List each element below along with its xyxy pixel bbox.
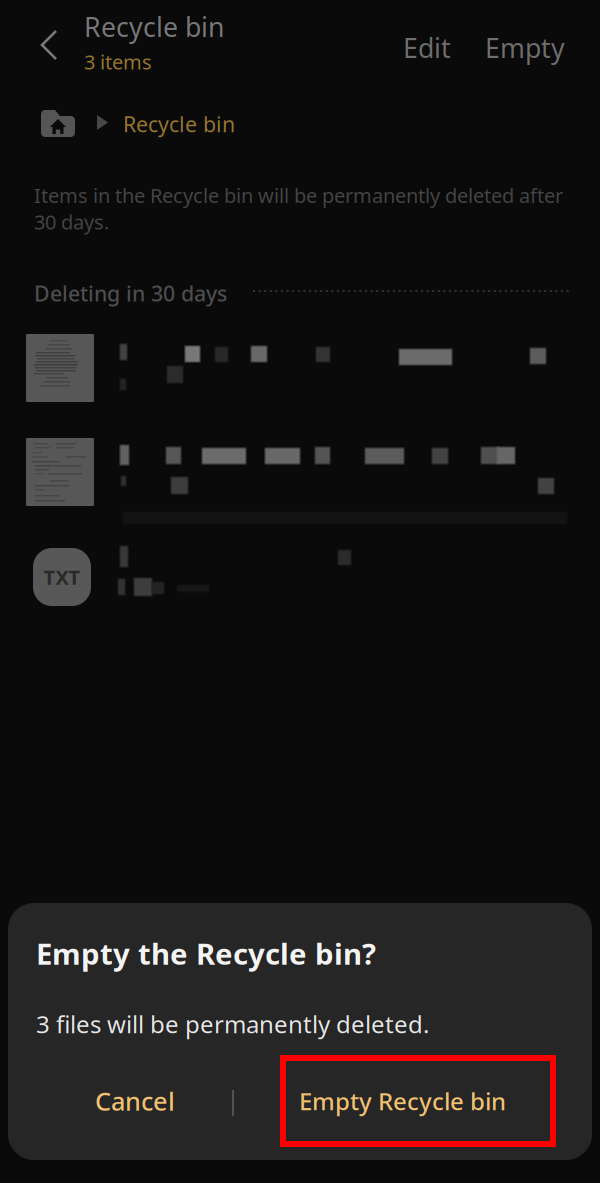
staticText: Edit [403,30,451,65]
button[interactable]: Empty [473,24,577,71]
button[interactable]: Cancel [76,1070,194,1132]
staticText: Deleting in 30 days [34,279,227,307]
staticText: Empty the Recycle bin? [36,934,376,973]
button[interactable]: Document [26,438,94,506]
staticText: Recycle bin [123,110,235,138]
staticText: 3 items [84,48,152,75]
staticText: Empty [485,30,565,65]
button[interactable]: Document [26,334,94,402]
staticText: Recycle bin [84,9,224,44]
button[interactable]: Edit [391,24,463,71]
button[interactable]: Home folder [38,107,78,139]
staticText: Items in the Recycle bin will be permane… [34,182,563,235]
staticText: Empty Recycle bin [299,1085,506,1117]
button[interactable]: Recycle bin [84,9,224,75]
staticText: 3 files will be permanently deleted. [36,1008,429,1040]
button[interactable]: Back [36,28,62,62]
staticText: Cancel [95,1084,175,1118]
button[interactable]: Recycle bin [123,110,235,138]
staticText: TXT [43,564,80,590]
button[interactable]: Empty Recycle bin [283,1058,553,1144]
button[interactable]: Text file [33,548,91,606]
